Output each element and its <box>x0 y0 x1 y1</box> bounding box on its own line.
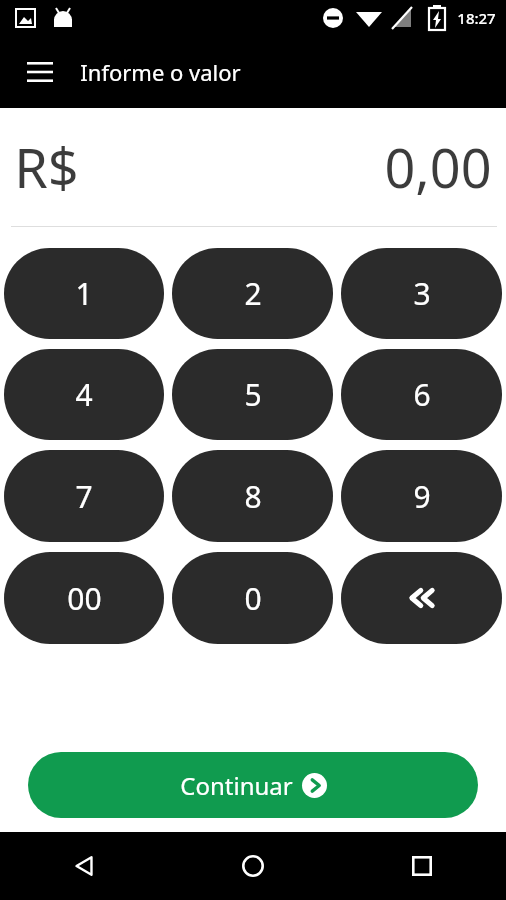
staticText: 6 <box>413 374 431 415</box>
button[interactable]: Open navigation menu <box>18 50 62 94</box>
staticText: 0,00 <box>384 130 492 204</box>
button[interactable]: Recent apps <box>337 832 506 900</box>
button[interactable]: 4 <box>4 349 164 440</box>
staticText: 00 <box>67 578 102 619</box>
staticText: 8 <box>244 476 262 517</box>
staticText: 0 <box>244 578 262 619</box>
staticText: 2 <box>244 273 262 314</box>
staticText: 1 <box>75 273 93 314</box>
staticText: 9 <box>413 476 431 517</box>
button[interactable]: 5 <box>172 349 333 440</box>
button[interactable]: Continuar <box>28 752 478 818</box>
staticText: Continuar <box>180 769 293 802</box>
staticText: 4 <box>75 374 93 415</box>
staticText: 3 <box>413 273 431 314</box>
button[interactable]: 00 <box>4 552 164 644</box>
staticText: Informe o valor <box>80 57 241 87</box>
button[interactable]: Backspace <box>341 552 502 644</box>
staticText: 18:27 <box>457 8 496 28</box>
button[interactable]: 9 <box>341 450 502 542</box>
button[interactable]: 1 <box>4 248 164 339</box>
button[interactable]: Back <box>0 832 168 900</box>
button[interactable]: 0 <box>172 552 333 644</box>
staticText: 7 <box>75 476 93 517</box>
button[interactable]: 6 <box>341 349 502 440</box>
staticText: 5 <box>244 374 262 415</box>
button[interactable]: 3 <box>341 248 502 339</box>
button[interactable]: 7 <box>4 450 164 542</box>
button[interactable]: 2 <box>172 248 333 339</box>
button[interactable]: Home <box>168 832 337 900</box>
staticText: R$ <box>14 130 79 204</box>
button[interactable]: 8 <box>172 450 333 542</box>
